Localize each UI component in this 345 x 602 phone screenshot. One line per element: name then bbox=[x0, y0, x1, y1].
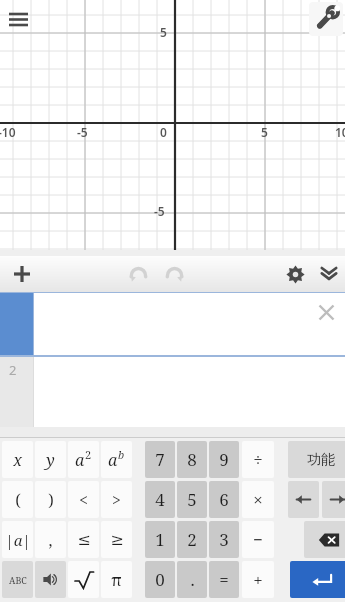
button[interactable]: ≥ bbox=[101, 521, 132, 558]
staticText: 8 bbox=[187, 448, 197, 471]
staticText: 0 bbox=[155, 568, 165, 591]
button[interactable]: × bbox=[242, 481, 274, 518]
button[interactable]: 0 bbox=[145, 561, 175, 598]
button[interactable]: < bbox=[68, 481, 99, 518]
staticText: ABC bbox=[9, 574, 27, 586]
button[interactable]: Menu bbox=[2, 4, 36, 38]
button[interactable]: a bbox=[68, 441, 99, 478]
staticText: ÷ bbox=[253, 448, 263, 471]
button[interactable]: 8 bbox=[177, 441, 207, 478]
button[interactable]: Sound bbox=[35, 561, 66, 598]
button[interactable]: ) bbox=[35, 481, 66, 518]
staticText: = bbox=[219, 568, 229, 591]
button[interactable]: 6 bbox=[209, 481, 239, 518]
staticText: -10 bbox=[0, 124, 16, 140]
staticText: 2 bbox=[187, 528, 197, 551]
staticText: 1 bbox=[155, 528, 165, 551]
button[interactable]: ≤ bbox=[68, 521, 99, 558]
staticText: -5 bbox=[77, 124, 88, 140]
button[interactable]: Redo bbox=[157, 256, 193, 292]
button[interactable]: 7 bbox=[145, 441, 175, 478]
staticText: a bbox=[75, 449, 85, 471]
button[interactable]: Enter bbox=[290, 561, 345, 598]
staticText: 10 bbox=[335, 124, 345, 140]
staticText: . bbox=[190, 568, 195, 591]
button[interactable]: Move left bbox=[288, 481, 319, 518]
button[interactable]: Settings bbox=[277, 256, 313, 292]
staticText: 5 bbox=[261, 124, 268, 140]
button[interactable]: 1 bbox=[145, 521, 175, 558]
button[interactable]: 3 bbox=[209, 521, 239, 558]
staticText: 2 bbox=[85, 447, 92, 462]
staticText: 3 bbox=[219, 528, 229, 551]
button[interactable]: 9 bbox=[209, 441, 239, 478]
staticText: y bbox=[46, 449, 55, 471]
staticText: × bbox=[253, 488, 263, 511]
staticText: + bbox=[253, 568, 263, 591]
staticText: 9 bbox=[219, 448, 229, 471]
button[interactable]: , bbox=[35, 521, 66, 558]
button[interactable]: Add expression bbox=[4, 256, 40, 292]
button[interactable]: Clear expression bbox=[0, 293, 345, 355]
staticText: 2 bbox=[9, 361, 17, 379]
button[interactable]: 2 bbox=[0, 357, 345, 427]
button[interactable]: ÷ bbox=[242, 441, 274, 478]
button[interactable]: 4 bbox=[145, 481, 175, 518]
staticText: < bbox=[79, 489, 88, 511]
staticText: 5 bbox=[160, 24, 167, 40]
button[interactable]: − bbox=[242, 521, 274, 558]
staticText: , bbox=[48, 529, 53, 551]
button[interactable]: Square root bbox=[68, 561, 99, 598]
button[interactable]: Move right bbox=[322, 481, 345, 518]
button[interactable]: Clear expression bbox=[313, 299, 339, 325]
staticText: π bbox=[111, 569, 122, 591]
staticText: ( bbox=[15, 489, 21, 511]
button[interactable]: 5 bbox=[177, 481, 207, 518]
button[interactable]: . bbox=[177, 561, 207, 598]
staticText: 6 bbox=[219, 488, 229, 511]
staticText: b bbox=[118, 447, 125, 462]
button[interactable]: ( bbox=[2, 481, 33, 518]
button[interactable]: Graph settings bbox=[309, 2, 343, 36]
button[interactable]: > bbox=[101, 481, 132, 518]
staticText: ) bbox=[48, 489, 54, 511]
staticText: 7 bbox=[155, 448, 165, 471]
staticText: ≥ bbox=[110, 530, 124, 549]
button[interactable]: |a| bbox=[2, 521, 33, 558]
button[interactable]: x bbox=[2, 441, 33, 478]
staticText: -5 bbox=[154, 203, 165, 219]
button[interactable]: 2 bbox=[177, 521, 207, 558]
staticText: a bbox=[108, 449, 118, 471]
button[interactable]: a bbox=[101, 441, 132, 478]
staticText: − bbox=[253, 528, 263, 551]
staticText: x bbox=[13, 449, 22, 471]
button[interactable]: 功能 bbox=[288, 441, 345, 478]
button[interactable]: Undo bbox=[120, 256, 156, 292]
staticText: ≤ bbox=[77, 530, 91, 549]
button[interactable]: ABC keyboard bbox=[2, 561, 33, 598]
staticText: |a| bbox=[5, 530, 31, 550]
button[interactable]: Collapse bbox=[311, 256, 345, 292]
staticText: 5 bbox=[187, 488, 197, 511]
staticText: 0 bbox=[160, 124, 167, 140]
button[interactable]: π bbox=[101, 561, 132, 598]
button[interactable]: = bbox=[209, 561, 239, 598]
button[interactable]: + bbox=[242, 561, 274, 598]
staticText: 4 bbox=[155, 488, 165, 511]
staticText: 功能 bbox=[307, 451, 335, 469]
button[interactable]: y bbox=[35, 441, 66, 478]
staticText: > bbox=[112, 489, 121, 511]
button[interactable]: Backspace bbox=[304, 521, 345, 558]
